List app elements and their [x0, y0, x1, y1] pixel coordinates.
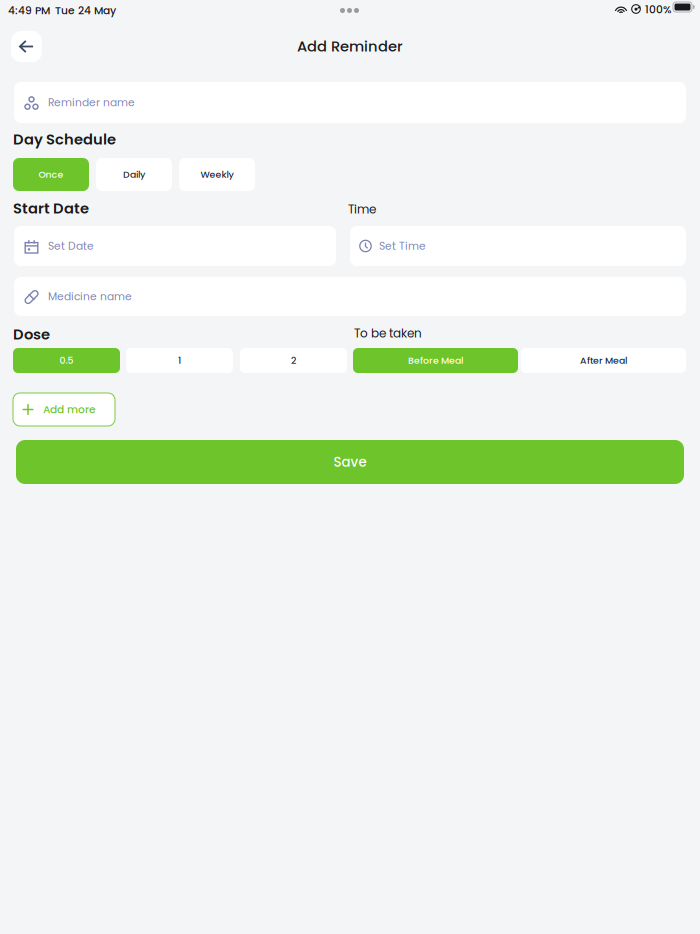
staticText: Add Reminder	[297, 36, 403, 56]
button[interactable]: 0.5	[13, 348, 120, 373]
staticText: Medicine name	[48, 289, 132, 304]
button[interactable]: After Meal	[521, 348, 686, 373]
button[interactable]: 2	[240, 348, 347, 373]
staticText: After Meal	[580, 354, 627, 367]
staticText: Set Time	[379, 238, 426, 253]
button[interactable]: Once	[13, 158, 89, 191]
staticText: Reminder name	[48, 95, 135, 110]
staticText: 100%	[645, 2, 671, 17]
staticText: Dose	[13, 324, 50, 344]
button[interactable]: Add more	[13, 393, 115, 426]
staticText: Save	[333, 453, 366, 471]
staticText: Before Meal	[408, 354, 463, 367]
staticText: Time	[348, 201, 376, 218]
staticText: Tue 24 May	[55, 3, 116, 18]
button[interactable]: Weekly	[179, 158, 255, 191]
button[interactable]: 1	[126, 348, 233, 373]
staticText: Once	[38, 168, 63, 181]
button[interactable]: Daily	[96, 158, 172, 191]
staticText: Add more	[43, 402, 96, 417]
staticText: 1	[178, 354, 181, 367]
staticText: Day Schedule	[13, 129, 116, 149]
staticText: 4:49 PM	[8, 3, 50, 18]
button[interactable]: Medicine name	[14, 277, 686, 316]
button[interactable]: Save	[16, 440, 684, 484]
staticText: To be taken	[354, 325, 422, 342]
staticText: Start Date	[13, 198, 89, 218]
staticText: 2	[291, 354, 296, 367]
button[interactable]: Back	[11, 31, 42, 62]
staticText: Set Date	[48, 238, 94, 253]
button[interactable]: Reminder name	[14, 82, 686, 123]
button[interactable]: Set Time	[350, 226, 686, 266]
staticText: 0.5	[59, 354, 73, 367]
button[interactable]: Before Meal	[353, 348, 518, 373]
button[interactable]: Set Date	[14, 226, 336, 266]
staticText: Daily	[123, 168, 145, 181]
staticText: Weekly	[200, 168, 233, 181]
